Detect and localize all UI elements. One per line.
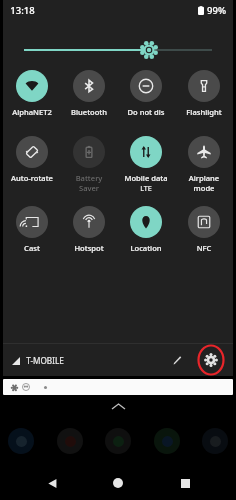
staticText: Airplane mode [178,173,230,193]
button[interactable] [154,428,180,454]
button[interactable]: Cast [6,206,58,253]
button[interactable] [8,428,34,454]
button[interactable]: Settings [198,347,224,373]
staticText: LTE [120,183,172,193]
button[interactable] [3,379,233,395]
button[interactable] [105,428,131,454]
staticText: 99% [207,4,226,17]
staticText: Mobile data [120,173,172,183]
button[interactable]: Edit tiles [166,349,188,371]
button[interactable]: Bluetooth [63,70,115,117]
button[interactable]: Back [37,468,67,498]
button[interactable]: Do not dis [120,70,172,117]
button[interactable]: Recent apps [170,468,200,498]
staticText: Location [120,243,172,253]
button[interactable]: Airplane mode [178,136,230,193]
staticText: Hotspot [63,243,115,253]
staticText: NFC [178,243,230,253]
button[interactable]: Battery Saver [63,136,115,193]
staticText: Bluetooth [63,107,115,117]
button[interactable]: Location [120,206,172,253]
staticText: AlphaNET2 [6,107,58,117]
button[interactable]: Home [103,468,133,498]
button[interactable]: Collapse [0,398,236,414]
staticText: Cast [6,243,58,253]
button[interactable]: Brightness [24,39,212,61]
button[interactable]: NFC [178,206,230,253]
button[interactable]: Mobile data [120,136,172,193]
staticText: T-MOBILE [26,355,64,366]
staticText: Battery Saver [63,173,115,193]
staticText: Do not dis [120,107,172,117]
button[interactable]: Auto-rotate [6,136,58,183]
button[interactable] [57,428,83,454]
staticText: Flashlight [178,107,230,117]
button[interactable]: T-MOBILE [12,355,64,366]
staticText: 13:18 [10,4,35,17]
button[interactable]: Flashlight [178,70,230,117]
staticText: Auto-rotate [6,173,58,183]
button[interactable]: Hotspot [63,206,115,253]
button[interactable] [202,428,228,454]
button[interactable]: AlphaNET2 [6,70,58,117]
